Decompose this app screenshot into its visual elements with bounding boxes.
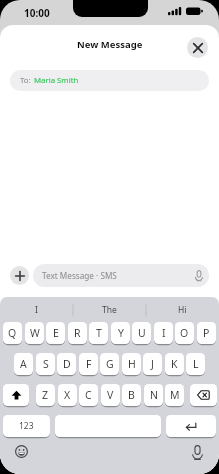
button[interactable]: A bbox=[14, 353, 33, 375]
button[interactable] bbox=[187, 37, 208, 58]
staticText: B bbox=[128, 388, 135, 402]
staticText: Z bbox=[42, 388, 49, 402]
button[interactable]: I bbox=[154, 322, 173, 344]
staticText: Y bbox=[118, 326, 124, 340]
button[interactable]: E bbox=[46, 322, 65, 344]
button[interactable]: V bbox=[101, 384, 120, 406]
staticText: G bbox=[106, 357, 114, 371]
button[interactable]: To: bbox=[10, 70, 209, 91]
button[interactable]: G bbox=[100, 353, 119, 375]
button[interactable]: I bbox=[0, 297, 73, 323]
button[interactable]: T bbox=[89, 322, 108, 344]
button[interactable] bbox=[190, 444, 204, 462]
button[interactable]: N bbox=[144, 384, 163, 406]
button[interactable]: S bbox=[36, 353, 55, 375]
staticText: F bbox=[86, 357, 92, 371]
button[interactable] bbox=[10, 266, 29, 285]
button[interactable] bbox=[55, 415, 161, 437]
staticText: To: bbox=[20, 75, 31, 86]
button[interactable]: L bbox=[186, 353, 205, 375]
button[interactable]: 123 bbox=[3, 415, 50, 437]
staticText: O bbox=[180, 326, 189, 340]
staticText: M bbox=[170, 388, 180, 402]
button[interactable]: D bbox=[57, 353, 76, 375]
button[interactable]: B bbox=[122, 384, 141, 406]
button[interactable]: H bbox=[122, 353, 141, 375]
staticText: Q bbox=[8, 326, 17, 340]
button[interactable]: C bbox=[79, 384, 98, 406]
staticText: U bbox=[138, 326, 146, 340]
button[interactable] bbox=[14, 444, 29, 459]
staticText: H bbox=[128, 357, 136, 371]
staticText: S bbox=[43, 357, 49, 371]
staticText: R bbox=[74, 326, 81, 340]
button[interactable] bbox=[3, 384, 29, 406]
staticText: X bbox=[64, 388, 71, 402]
staticText: New Message bbox=[77, 38, 143, 51]
button[interactable]: O bbox=[175, 322, 194, 344]
button[interactable]: F bbox=[79, 353, 98, 375]
button[interactable]: The bbox=[73, 297, 146, 323]
button[interactable]: Text Message · SMS bbox=[33, 264, 209, 287]
staticText: I bbox=[35, 304, 38, 316]
staticText: C bbox=[85, 388, 92, 402]
staticText: W bbox=[30, 326, 40, 340]
staticText: N bbox=[150, 388, 158, 402]
button[interactable]: Q bbox=[3, 322, 22, 344]
button[interactable]: J bbox=[143, 353, 162, 375]
button[interactable]: X bbox=[58, 384, 77, 406]
staticText: P bbox=[203, 326, 210, 340]
button[interactable]: W bbox=[25, 322, 44, 344]
staticText: L bbox=[193, 357, 199, 371]
button[interactable]: R bbox=[68, 322, 87, 344]
button[interactable]: P bbox=[197, 322, 216, 344]
button[interactable]: Z bbox=[36, 384, 55, 406]
staticText: Maria Smith bbox=[34, 75, 79, 86]
staticText: A bbox=[20, 357, 27, 371]
button[interactable]: M bbox=[165, 384, 184, 406]
staticText: The bbox=[102, 304, 117, 316]
staticText: V bbox=[107, 388, 114, 402]
staticText: J bbox=[151, 357, 154, 371]
button[interactable]: Y bbox=[111, 322, 130, 344]
button[interactable]: U bbox=[132, 322, 151, 344]
staticText: 10:00 bbox=[24, 6, 50, 20]
button[interactable]: K bbox=[165, 353, 184, 375]
staticText: E bbox=[53, 326, 59, 340]
staticText: T bbox=[96, 326, 102, 340]
button[interactable] bbox=[190, 384, 217, 406]
staticText: Hi bbox=[178, 304, 187, 316]
staticText: K bbox=[171, 357, 178, 371]
staticText: I bbox=[162, 326, 166, 340]
staticText: 123 bbox=[19, 420, 34, 432]
staticText: Text Message · SMS bbox=[42, 270, 117, 281]
button[interactable]: Hi bbox=[146, 297, 219, 323]
staticText: D bbox=[63, 357, 71, 371]
button[interactable] bbox=[166, 415, 216, 437]
